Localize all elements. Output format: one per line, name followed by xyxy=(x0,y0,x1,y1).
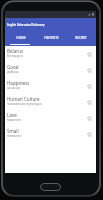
staticText: English Belarusian Dictionary xyxy=(7,23,45,27)
staticText: каханне xyxy=(7,117,21,122)
staticText: Human Culture xyxy=(7,96,40,102)
staticText: Happiness xyxy=(7,80,30,86)
staticText: Love xyxy=(7,112,17,118)
button[interactable]: Add to favorites xyxy=(85,114,94,123)
button[interactable]: RECENT xyxy=(66,31,96,46)
staticText: Belarus xyxy=(7,48,24,54)
staticText: Small xyxy=(7,128,19,134)
button[interactable]: Add to favorites xyxy=(85,50,94,59)
button[interactable]: Add to favorites xyxy=(85,130,94,139)
button[interactable]: Good xyxy=(5,62,96,78)
staticText: чалавечая культура xyxy=(7,101,42,106)
button[interactable]: Add to favorites xyxy=(85,66,94,75)
button[interactable]: FAVORITE xyxy=(36,31,66,46)
staticText: RECENT xyxy=(75,36,87,40)
staticText: шчасце xyxy=(7,85,21,90)
button[interactable]: Small xyxy=(5,126,96,142)
staticText: FAVORITE xyxy=(44,36,59,40)
staticText: добры xyxy=(7,69,19,74)
button[interactable]: HOME xyxy=(5,31,36,46)
staticText: невялікі xyxy=(7,133,22,138)
staticText: Беларусь xyxy=(7,53,23,58)
button[interactable]: Add to favorites xyxy=(85,98,94,107)
button[interactable]: Love xyxy=(5,110,96,126)
staticText: Good xyxy=(7,64,19,70)
button[interactable]: Belarus xyxy=(5,46,96,62)
button[interactable]: Add to favorites xyxy=(85,82,94,91)
button[interactable]: Human Culture xyxy=(5,94,96,110)
button[interactable]: Happiness xyxy=(5,78,96,94)
button[interactable]: Home xyxy=(40,183,61,191)
staticText: HOME xyxy=(16,36,26,40)
